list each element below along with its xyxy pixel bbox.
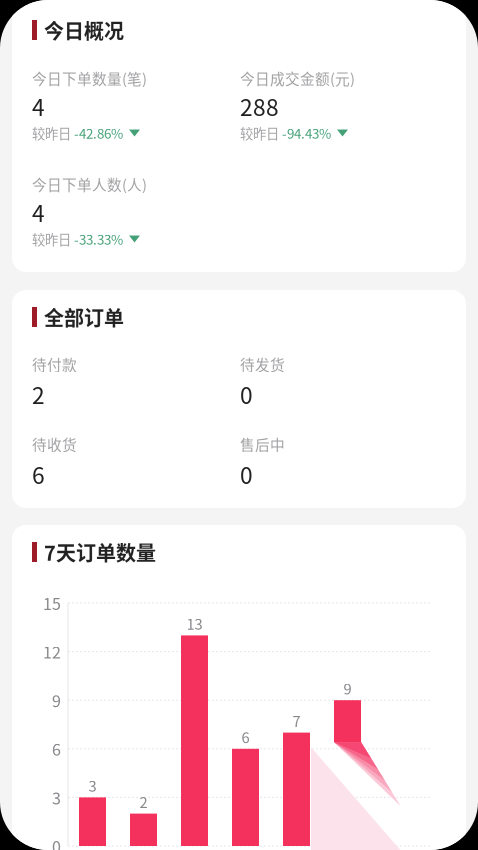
button[interactable]: 今日概况 (12, 0, 466, 272)
staticText: 较昨日 (32, 229, 74, 249)
staticText: 今日下单人数(人) (32, 173, 147, 195)
staticText: -94.43% (282, 123, 331, 143)
staticText: 0 (52, 834, 61, 850)
staticText: 待付款 (32, 353, 77, 375)
staticText: 3 (88, 775, 96, 796)
staticText: 今日成交金额(元) (240, 67, 355, 89)
staticText: 13 (186, 613, 202, 634)
staticText: 较昨日 (240, 123, 282, 143)
staticText: -42.86% (74, 123, 123, 143)
staticText: 12 (43, 640, 61, 663)
staticText: 9 (343, 678, 351, 699)
staticText: 288 (240, 90, 279, 122)
staticText: -33.33% (74, 229, 123, 249)
staticText: 7天订单数量 (44, 537, 156, 566)
staticText: 3 (52, 786, 61, 809)
staticText: 待收货 (32, 433, 77, 455)
staticText: 0 (240, 458, 253, 490)
staticText: 15 (43, 591, 61, 615)
staticText: 今日下单数量(笔) (32, 67, 147, 89)
staticText: 待发货 (240, 353, 285, 375)
staticText: 较昨日 (32, 123, 74, 143)
staticText: 2 (139, 791, 147, 812)
staticText: 今日概况 (44, 15, 124, 44)
staticText: 9 (52, 689, 61, 712)
staticText: 7 (292, 710, 300, 731)
staticText: 2 (32, 378, 45, 410)
staticText: 6 (241, 726, 249, 747)
staticText: 全部订单 (44, 302, 124, 331)
staticText: 6 (32, 458, 45, 490)
staticText: 6 (52, 737, 61, 760)
button[interactable]: 全部订单 (12, 290, 466, 508)
staticText: 4 (32, 196, 45, 228)
staticText: 0 (240, 378, 253, 410)
staticText: 4 (32, 90, 45, 122)
staticText: 售后中 (240, 433, 285, 455)
